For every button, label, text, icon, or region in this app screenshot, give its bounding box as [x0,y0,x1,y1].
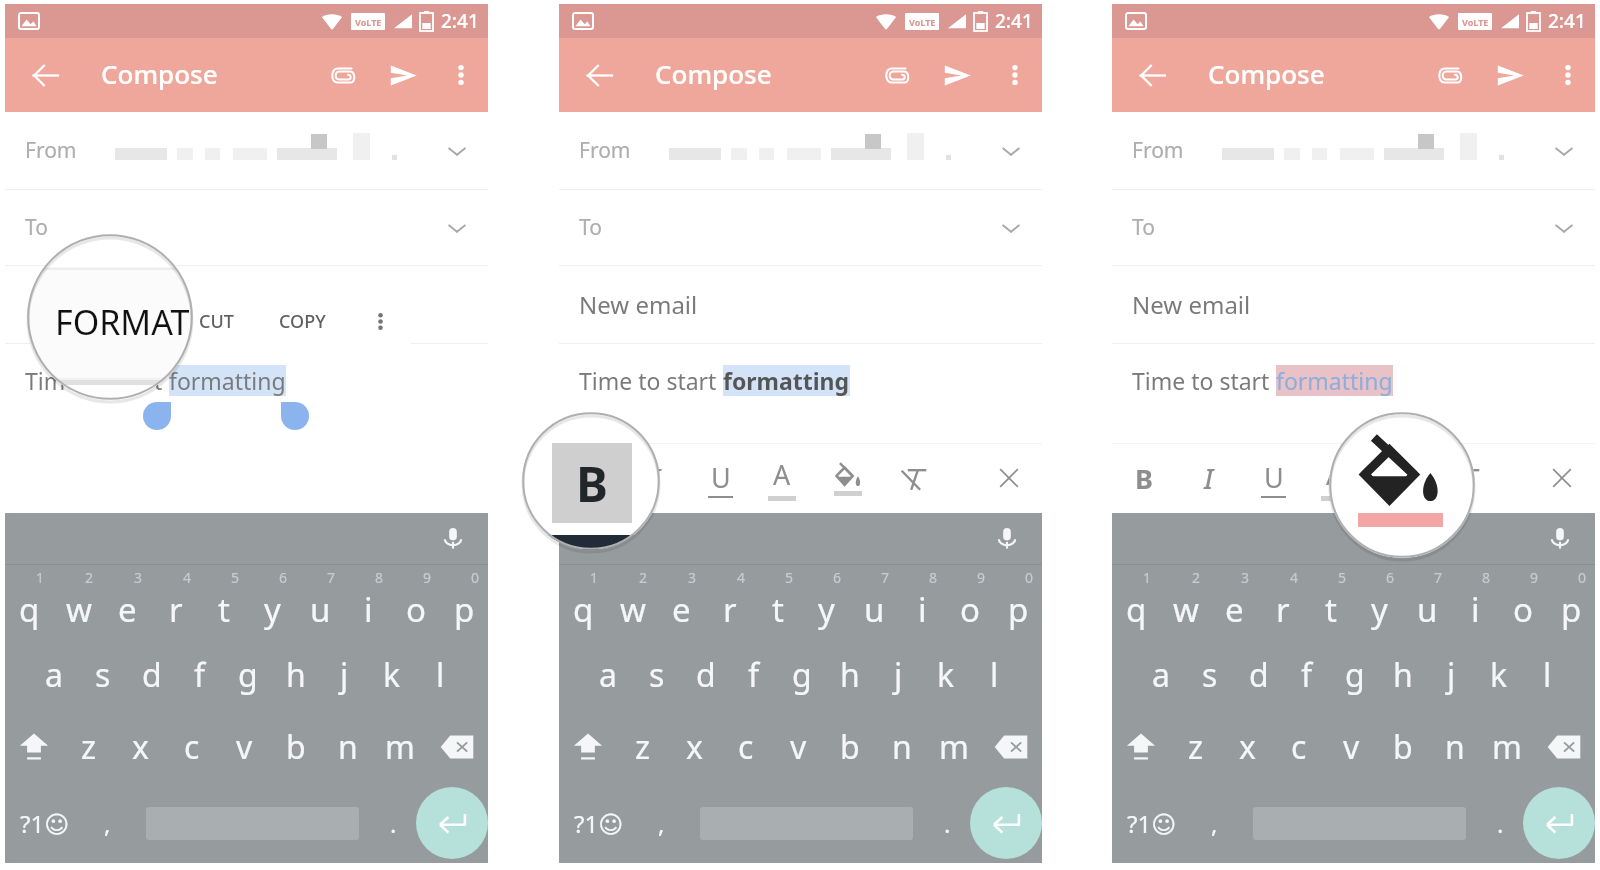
button[interactable]: Symbols and emoji [7,783,83,863]
button[interactable]: a [583,639,632,711]
button[interactable]: 6 [802,565,850,639]
button[interactable]: CUT [172,287,260,356]
button[interactable]: 6 [248,565,296,639]
button[interactable]: v [1325,711,1377,783]
button[interactable]: , [1192,783,1236,863]
button[interactable]: Backspace [426,711,488,783]
button[interactable]: 0 [1547,565,1595,639]
button[interactable]: From [1112,112,1595,189]
button[interactable]: Close formatting [1535,443,1589,513]
button[interactable]: j [320,639,368,711]
button[interactable]: From [5,112,488,189]
button[interactable]: Attach file [870,49,922,101]
button[interactable]: a [29,639,78,711]
button[interactable]: 0 [994,565,1042,639]
button[interactable]: . [1478,783,1522,863]
button[interactable]: Attach file [1423,49,1475,101]
button[interactable]: Enter [413,783,491,863]
button[interactable]: Send [1484,49,1536,101]
button[interactable]: Shift [1112,711,1170,783]
button[interactable] [5,266,488,343]
button[interactable]: 0 [440,565,488,639]
button[interactable]: Symbols and emoji [561,783,637,863]
button[interactable]: n [1429,711,1481,783]
button[interactable]: 2 [1161,565,1210,639]
button[interactable]: 9 [946,565,994,639]
button[interactable]: Backspace [1533,711,1595,783]
button[interactable]: More [349,287,411,356]
button[interactable]: Text colour [1308,443,1362,513]
button[interactable]: j [1427,639,1475,711]
button[interactable]: 7 [850,565,898,639]
button[interactable]: l [1523,639,1571,711]
button[interactable]: d [681,639,730,711]
button[interactable]: g [224,639,272,711]
button[interactable]: To [1112,190,1595,265]
button[interactable]: 7 [296,565,344,639]
button[interactable]: b [270,711,322,783]
button[interactable]: s [632,639,681,711]
button[interactable]: Bold [1117,443,1171,513]
button[interactable]: 3 [1210,565,1259,639]
button[interactable]: 8 [344,565,392,639]
button[interactable]: Voice input [1543,522,1577,556]
button[interactable]: Italic [629,443,683,513]
button[interactable]: Text colour [755,443,809,513]
button[interactable]: z [1170,711,1221,783]
button[interactable]: Close formatting [982,443,1036,513]
button[interactable]: Symbols and emoji [1114,783,1190,863]
button[interactable]: Space [687,783,925,863]
button[interactable]: Underline [693,443,747,513]
button[interactable]: h [272,639,320,711]
button[interactable]: 3 [103,565,152,639]
button[interactable]: Backspace [980,711,1042,783]
button[interactable]: Underline [1246,443,1300,513]
button[interactable]: h [1379,639,1427,711]
button[interactable]: Highlight colour [1373,443,1427,513]
button[interactable]: To [559,190,1042,265]
button[interactable]: s [1185,639,1234,711]
button[interactable]: j [874,639,922,711]
button[interactable]: l [970,639,1018,711]
button[interactable]: Shift [5,711,63,783]
button[interactable]: x [1221,711,1273,783]
button[interactable]: x [114,711,166,783]
button[interactable]: f [730,639,778,711]
button[interactable]: COPY [258,287,346,356]
button[interactable]: l [416,639,464,711]
button[interactable]: From [559,112,1042,189]
button[interactable]: Enter [1520,783,1598,863]
button[interactable]: 4 [152,565,200,639]
button[interactable]: Shift [559,711,617,783]
button[interactable]: 7 [1403,565,1451,639]
button[interactable]: 8 [898,565,946,639]
button[interactable]: 8 [1451,565,1499,639]
button[interactable]: k [1475,639,1523,711]
button[interactable]: g [1331,639,1379,711]
button[interactable]: z [617,711,668,783]
button[interactable]: Enter [967,783,1045,863]
button[interactable]: 1 [1112,565,1161,639]
button[interactable]: More options [989,49,1041,101]
button[interactable]: m [374,711,426,783]
button[interactable]: 3 [657,565,706,639]
button[interactable]: To [5,190,488,265]
button[interactable]: New email [1112,266,1595,343]
button[interactable]: Voice input [436,522,470,556]
button[interactable]: 5 [1307,565,1355,639]
button[interactable]: h [826,639,874,711]
button[interactable]: Highlight colour [820,443,874,513]
button[interactable]: 4 [1259,565,1307,639]
button[interactable]: , [85,783,129,863]
button[interactable]: Back [1124,47,1180,103]
button[interactable]: n [876,711,928,783]
button[interactable]: More options [435,49,487,101]
button[interactable]: f [176,639,224,711]
button[interactable]: 9 [392,565,440,639]
button[interactable]: k [922,639,970,711]
button[interactable]: x [668,711,720,783]
button[interactable]: 1 [559,565,608,639]
button[interactable]: Clear formatting [1440,443,1494,513]
button[interactable]: 9 [1499,565,1547,639]
button[interactable]: Attach file [316,49,368,101]
